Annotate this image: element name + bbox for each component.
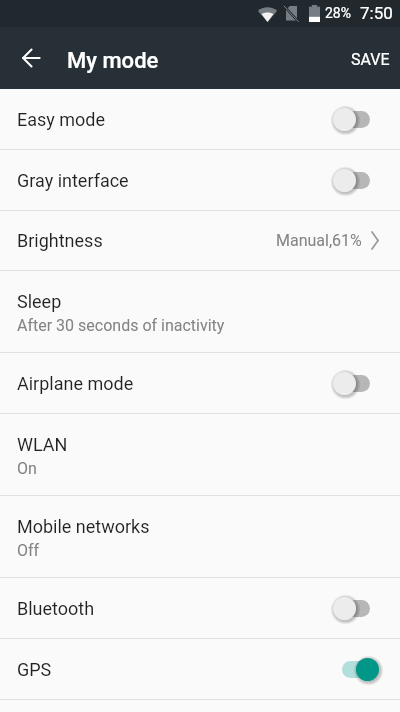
staticText: Easy mode [17, 109, 106, 130]
staticText: Airplane mode [17, 373, 134, 394]
staticText: Sleep [17, 291, 62, 312]
button[interactable]: Back [11, 38, 51, 78]
staticText: WLAN [17, 434, 68, 455]
staticText: On [17, 459, 37, 478]
button[interactable]: Bluetooth [0, 578, 400, 638]
staticText: Brightness [17, 230, 103, 251]
staticText: 28% [325, 5, 351, 21]
button[interactable]: Airplane mode [0, 353, 400, 413]
button[interactable]: Sleep [0, 271, 400, 352]
staticText: My mode [67, 48, 159, 74]
staticText: 7:50 [360, 3, 393, 23]
staticText: Gray interface [17, 170, 129, 191]
button[interactable]: Gray interface [0, 150, 400, 210]
staticText: GPS [17, 659, 52, 680]
button[interactable]: Brightness [0, 211, 400, 270]
button[interactable]: SAVE [341, 37, 400, 80]
staticText: After 30 seconds of inactivity [17, 316, 225, 335]
button[interactable]: Mobile networks [0, 496, 400, 577]
staticText: Mobile networks [17, 516, 150, 537]
staticText: Bluetooth [17, 598, 95, 619]
staticText: Off [17, 541, 40, 560]
button[interactable]: Easy mode [0, 89, 400, 149]
staticText: Manual,61% [276, 231, 362, 250]
button[interactable]: WLAN [0, 414, 400, 495]
button[interactable]: GPS [0, 639, 400, 699]
staticText: SAVE [351, 50, 390, 69]
